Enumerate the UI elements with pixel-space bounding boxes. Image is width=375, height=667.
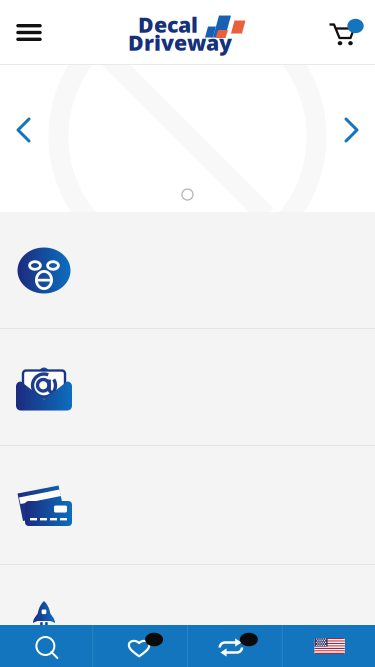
staticText: Decal (138, 10, 198, 39)
button[interactable]: Shopping cart (317, 0, 375, 65)
button[interactable] (0, 329, 375, 446)
button[interactable]: Language (283, 625, 375, 667)
staticText: Driveway (128, 28, 232, 57)
button[interactable]: Search (0, 625, 92, 667)
button[interactable]: Menu (0, 0, 58, 65)
button[interactable]: Previous slide (2, 108, 46, 152)
button[interactable] (0, 212, 375, 329)
button[interactable]: Decal (128, 13, 247, 51)
button[interactable]: Wishlist (93, 625, 187, 667)
button[interactable] (0, 446, 375, 565)
button[interactable]: Compare (188, 625, 282, 667)
button[interactable]: Slide 1 (176, 183, 199, 206)
button[interactable] (0, 565, 375, 625)
button[interactable]: Next slide (329, 108, 373, 152)
